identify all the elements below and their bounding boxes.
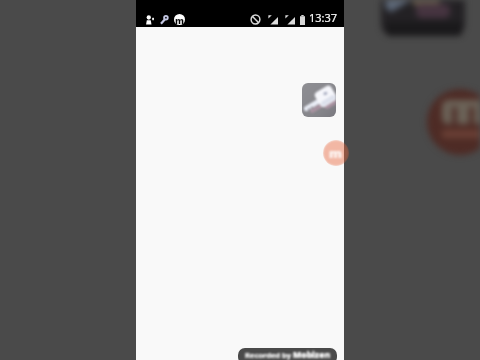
staticText: Recorded by — [245, 350, 293, 360]
staticText: m — [329, 144, 343, 162]
button[interactable]: Key app — [302, 83, 336, 117]
staticText: m — [175, 14, 185, 25]
staticText: Mobizen — [293, 349, 331, 360]
staticText: 13:37 — [309, 10, 338, 25]
button[interactable]: Mobizen recorder — [323, 140, 349, 166]
